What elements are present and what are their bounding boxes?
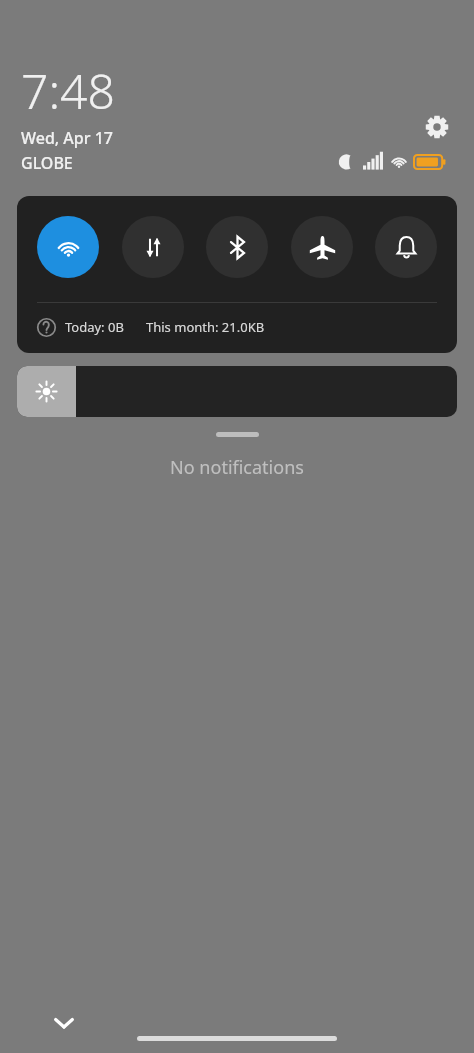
- staticText: Today: 0B: [65, 318, 124, 336]
- staticText: This month: 21.0KB: [146, 318, 265, 336]
- button[interactable]: Settings: [418, 108, 456, 146]
- button[interactable]: Bluetooth: [206, 216, 268, 278]
- button[interactable]: Mobile data: [122, 216, 184, 278]
- button[interactable]: Airplane mode: [291, 216, 353, 278]
- button[interactable]: Wi-Fi: [37, 216, 99, 278]
- button[interactable]: Ring mode: [375, 216, 437, 278]
- button[interactable]: Collapse: [44, 1003, 84, 1043]
- button[interactable]: Brightness: [17, 366, 457, 417]
- button[interactable]: Today: 0B: [37, 312, 265, 342]
- staticText: Wed, Apr 17: [21, 127, 114, 149]
- staticText: GLOBE: [21, 152, 73, 174]
- staticText: No notifications: [170, 455, 304, 480]
- staticText: 7:48: [21, 58, 115, 123]
